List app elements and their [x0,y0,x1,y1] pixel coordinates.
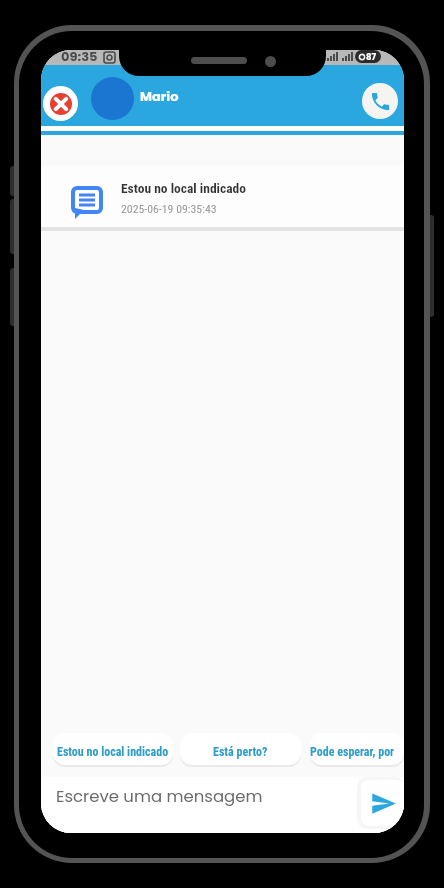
button[interactable]: Estou no local indicado [41,166,404,227]
staticText: Está perto? [213,745,268,759]
staticText: Estou no local indicado [57,745,169,759]
button[interactable]: Está perto? [180,733,301,765]
staticText: 2025-06-19 09:35:43 [121,202,217,216]
staticText: Mario [140,87,179,105]
button[interactable] [43,86,78,121]
staticText: Pode esperar, por favor [310,745,404,759]
staticText: Escreve uma mensagem [56,785,263,808]
staticText: 09:35 [61,50,98,62]
staticText: 87 [366,51,377,63]
button[interactable]: Pode esperar, por favor [310,733,404,765]
button[interactable] [361,780,404,826]
staticText: Estou no local indicado [121,180,246,196]
button[interactable]: Estou no local indicado [53,733,173,765]
button[interactable] [362,83,398,119]
